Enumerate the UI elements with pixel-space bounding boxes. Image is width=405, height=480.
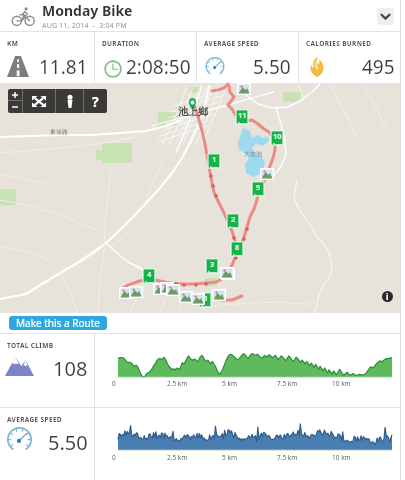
staticText: 11.81 [39, 54, 88, 75]
staticText: 7.5 km [277, 379, 298, 388]
staticText: km [273, 141, 282, 145]
staticText: CALORIES BURNED [306, 39, 372, 48]
staticText: i [386, 291, 389, 302]
staticText: km [238, 120, 247, 124]
staticText: 大坡池 [244, 150, 262, 158]
button[interactable]: Make this a Route [9, 316, 107, 330]
staticText: km [254, 192, 263, 196]
staticText: 東珍路 [50, 128, 68, 136]
button[interactable]: Zoom in [8, 89, 22, 100]
staticText: km [208, 269, 217, 273]
staticText: km [210, 164, 219, 168]
staticText: 495 [362, 54, 395, 75]
button[interactable]: Expand [377, 8, 394, 25]
staticText: KM [7, 39, 19, 48]
staticText: 11 [238, 110, 247, 120]
staticText: 8 [235, 242, 240, 252]
staticText: 3 [210, 259, 215, 269]
staticText: 池上鄉 [178, 105, 208, 118]
staticText: 2:08:50 [126, 54, 191, 75]
staticText: TOTAL CLIMB [7, 341, 54, 350]
staticText: 10 [273, 131, 282, 141]
staticText: 108 [53, 355, 88, 376]
staticText: DURATION [102, 39, 140, 48]
staticText: 2 [231, 214, 236, 224]
staticText: 5 km [222, 453, 237, 462]
staticText: 0 [112, 379, 116, 388]
button[interactable]: Fullscreen [23, 89, 55, 113]
staticText: AUG 11, 2014 - 3:04 PM [42, 21, 127, 31]
staticText: ? [92, 92, 99, 111]
staticText: 4 [147, 269, 152, 279]
staticText: km [233, 252, 242, 256]
staticText: 5.50 [253, 54, 291, 75]
staticText: km [145, 279, 154, 283]
button[interactable]: Zoom out [8, 101, 22, 113]
button[interactable]: Street view [56, 89, 83, 113]
staticText: 5.50 [48, 429, 88, 450]
staticText: 2.5 km [167, 379, 188, 388]
staticText: 10 km [332, 379, 351, 388]
button[interactable]: Map information [382, 291, 393, 302]
staticText: 1 [212, 154, 217, 164]
staticText: Make this a Route [16, 316, 100, 330]
staticText: AVERAGE SPEED [7, 415, 62, 424]
staticText: km [229, 224, 238, 228]
button[interactable]: Help [84, 89, 107, 113]
staticText: 10 km [332, 453, 351, 462]
staticText: 9 [256, 182, 261, 192]
staticText: km [201, 303, 210, 307]
staticText: AVERAGE SPEED [204, 39, 259, 48]
staticText: 7.5 km [277, 453, 298, 462]
staticText: 5 km [222, 379, 237, 388]
staticText: 6 [203, 293, 208, 303]
staticText: 2.5 km [167, 453, 188, 462]
staticText: Monday Bike [42, 1, 133, 20]
staticText: 0 [112, 453, 116, 462]
